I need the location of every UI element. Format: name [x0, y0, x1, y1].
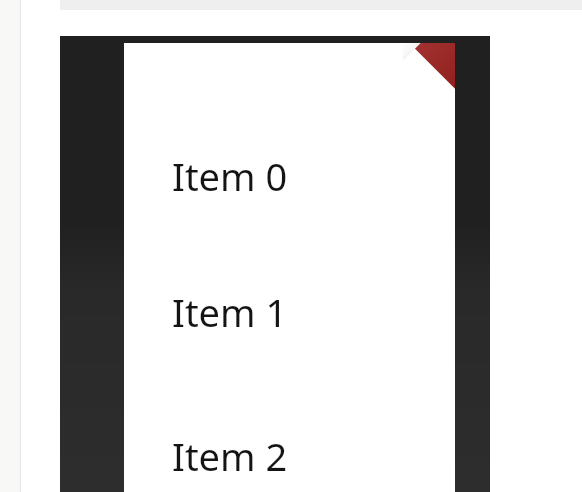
button[interactable]: Item 0: [124, 112, 455, 240]
staticText: Item 0: [172, 150, 288, 202]
button[interactable]: Item 2: [124, 384, 455, 492]
staticText: Item 1: [172, 286, 288, 338]
staticText: Item 2: [172, 430, 288, 482]
button[interactable]: Item 1: [124, 240, 455, 384]
